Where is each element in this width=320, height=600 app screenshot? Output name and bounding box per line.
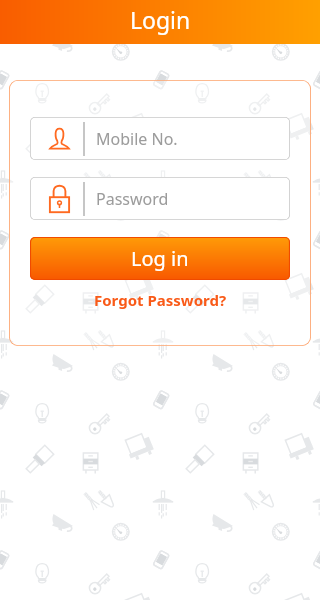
button[interactable]: Log in [30,237,290,280]
staticText: Log in [131,245,189,272]
button[interactable]: Password [30,177,290,220]
staticText: Password [96,188,169,210]
staticText: Login [130,4,191,35]
staticText: Mobile No. [96,128,178,150]
button[interactable]: Mobile No. [30,117,290,160]
staticText: Forgot Password? [94,290,227,310]
button[interactable]: Forgot Password? [30,290,290,310]
